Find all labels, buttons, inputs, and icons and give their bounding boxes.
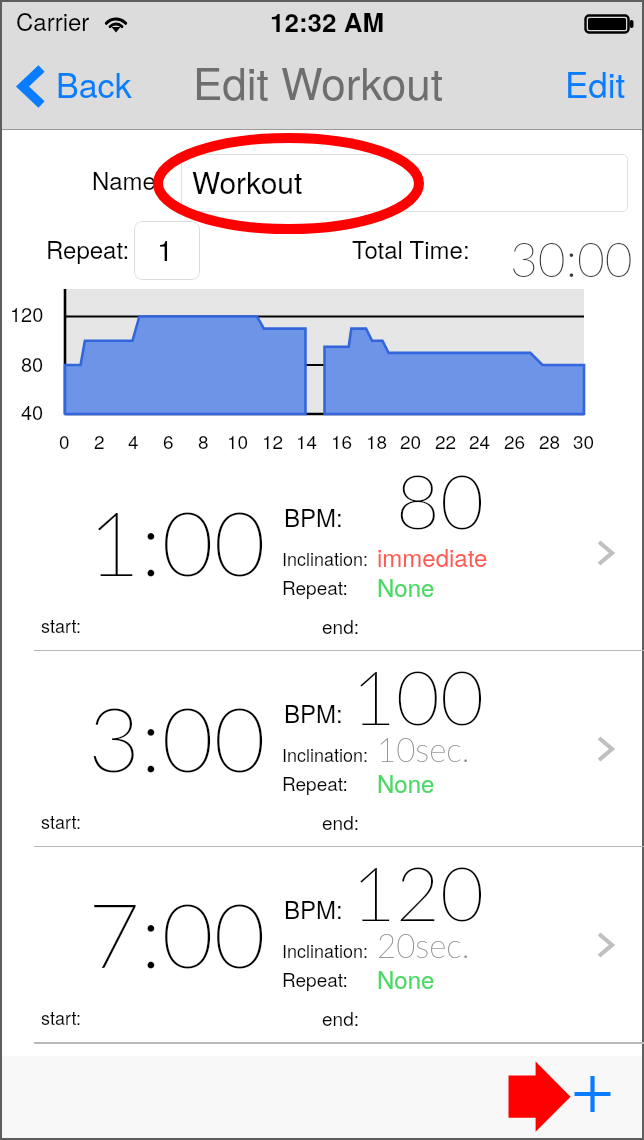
staticText: start: xyxy=(41,612,81,638)
staticText: BPM: xyxy=(284,891,343,925)
staticText: BPM: xyxy=(284,499,343,533)
staticText: Repeat: xyxy=(282,965,348,992)
staticText: 24 xyxy=(469,427,491,454)
button[interactable]: 7:00 xyxy=(2,847,642,1043)
staticText: 7:00 xyxy=(88,879,266,987)
staticText: 1:00 xyxy=(88,487,266,595)
staticText: 12:32 AM xyxy=(270,3,385,40)
staticText: 2 xyxy=(94,427,105,454)
staticText: Inclination: xyxy=(282,741,369,767)
staticText: BPM: xyxy=(284,695,343,729)
staticText: 0 xyxy=(59,427,70,454)
staticText: None xyxy=(377,765,435,799)
staticText: 120 xyxy=(351,846,484,937)
staticText: 14 xyxy=(296,427,318,454)
staticText: Inclination: xyxy=(282,937,369,963)
staticText: end: xyxy=(322,612,359,639)
staticText: 80 xyxy=(395,454,484,545)
staticText: 22 xyxy=(435,427,457,454)
staticText: 20sec. xyxy=(377,925,470,965)
staticText: end: xyxy=(322,1004,359,1031)
staticText: 12 xyxy=(262,427,284,454)
staticText: 6 xyxy=(163,427,174,454)
button[interactable]: Add interval xyxy=(570,1071,620,1121)
staticText: start: xyxy=(41,1004,81,1030)
staticText: 30:00 xyxy=(510,230,633,288)
staticText: Repeat: xyxy=(282,573,348,600)
staticText: Carrier xyxy=(16,3,90,37)
staticText: Total Time: xyxy=(352,231,470,265)
staticText: None xyxy=(377,961,435,995)
button[interactable]: Edit xyxy=(548,50,642,129)
button[interactable]: 3:00 xyxy=(2,651,642,847)
staticText: Repeat: xyxy=(282,769,348,796)
staticText: Repeat: xyxy=(46,231,130,265)
staticText: 30 xyxy=(573,427,595,454)
button[interactable]: 1 xyxy=(134,221,200,280)
staticText: 120 xyxy=(10,299,44,328)
staticText: 10 xyxy=(227,427,249,454)
staticText: 26 xyxy=(504,427,526,454)
staticText: end: xyxy=(322,808,359,835)
staticText: None xyxy=(377,569,435,603)
staticText: Workout xyxy=(192,160,303,203)
staticText: 100 xyxy=(351,650,484,741)
staticText: 8 xyxy=(198,427,209,454)
button[interactable]: Workout xyxy=(181,154,628,212)
staticText: 40 xyxy=(21,397,44,426)
staticText: 18 xyxy=(366,427,388,454)
staticText: 80 xyxy=(21,349,44,378)
staticText: Back xyxy=(56,59,132,108)
staticText: 16 xyxy=(331,427,353,454)
button[interactable]: 1:00 xyxy=(2,455,642,651)
staticText: Inclination: xyxy=(282,545,369,571)
staticText: 1 xyxy=(157,228,174,270)
staticText: 10sec. xyxy=(377,729,470,769)
staticText: 28 xyxy=(539,427,561,454)
staticText: 3:00 xyxy=(88,683,266,791)
button[interactable]: Back xyxy=(2,50,150,129)
staticText: immediate xyxy=(377,539,488,573)
staticText: 20 xyxy=(400,427,422,454)
staticText: start: xyxy=(41,808,81,834)
staticText: 4 xyxy=(128,427,139,454)
staticText: Edit xyxy=(565,58,626,108)
staticText: Edit Workout xyxy=(193,49,443,112)
staticText: Name: xyxy=(92,162,163,196)
